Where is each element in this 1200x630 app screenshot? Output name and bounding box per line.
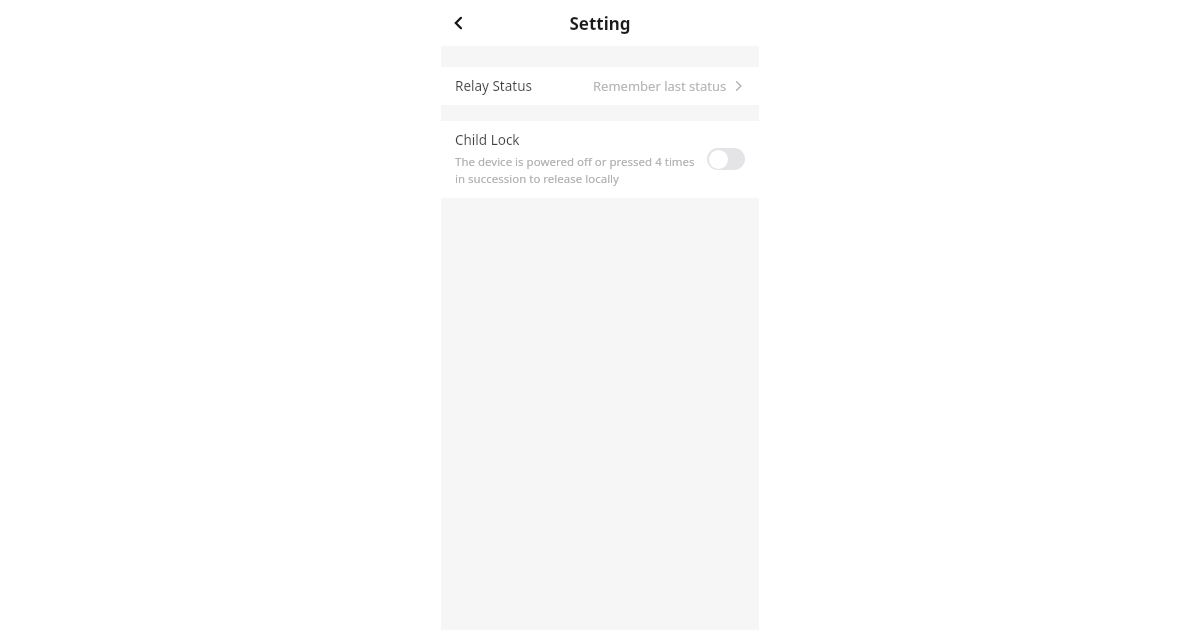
button[interactable]: Child Lock toggle [707,148,745,170]
staticText: The device is powered off or pressed 4 t… [455,154,695,186]
button[interactable]: Back [439,3,479,43]
staticText: Remember last status [593,77,727,95]
staticText: Setting [569,12,631,35]
staticText: Relay Status [455,77,533,95]
button[interactable]: Child Lock [441,121,759,198]
button[interactable]: Relay Status [441,67,759,105]
staticText: Child Lock [455,131,520,149]
